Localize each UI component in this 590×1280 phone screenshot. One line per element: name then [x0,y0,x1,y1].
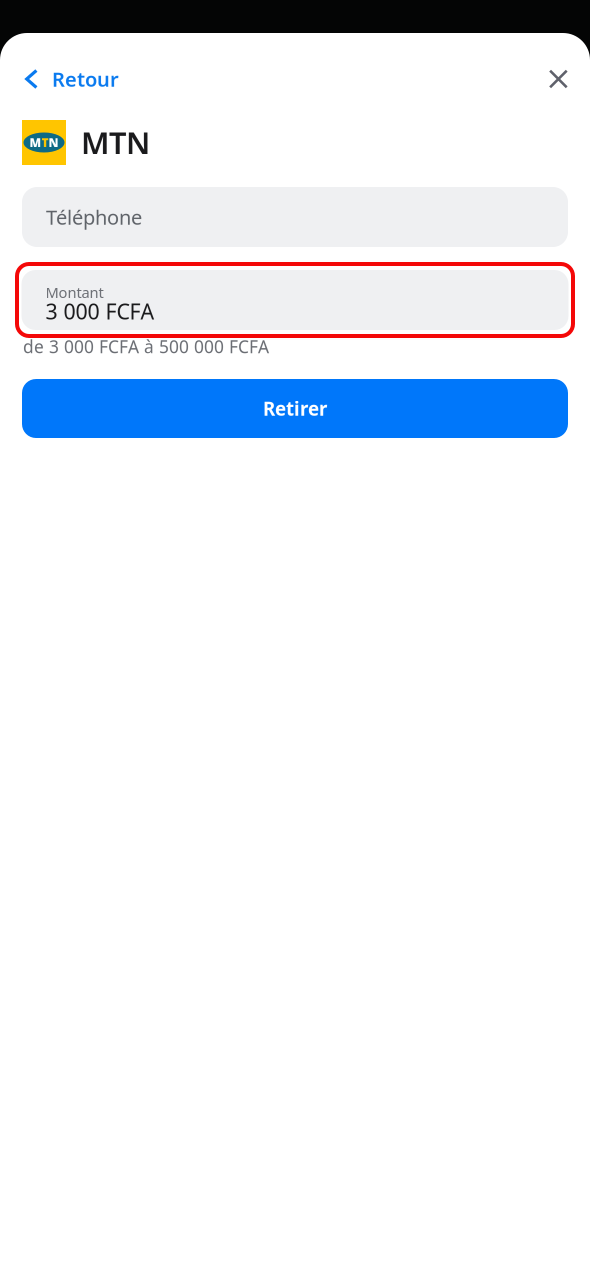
staticText: T [41,134,48,150]
staticText: MTN [81,122,150,163]
staticText: M [29,134,41,150]
staticText: Retour [52,66,119,92]
button[interactable]: Retirer [22,379,568,438]
staticText: de 3 000 FCFA à 500 000 FCFA [23,335,269,358]
button[interactable]: Fermer [531,52,590,106]
staticText: 3 000 FCFA [45,297,154,325]
staticText: Téléphone [46,204,142,230]
button[interactable]: Retour [0,52,131,106]
button[interactable]: Téléphone [22,187,568,247]
button[interactable]: Montant [17,264,573,336]
staticText: Montant [45,282,103,302]
staticText: N [48,134,58,150]
staticText: Retirer [263,396,327,421]
